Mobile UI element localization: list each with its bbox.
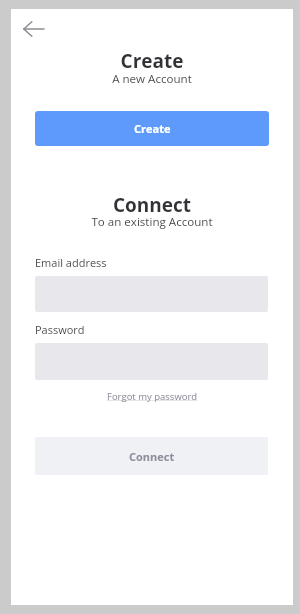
button[interactable]: Forgot my password — [107, 390, 198, 403]
staticText: Connect — [129, 449, 175, 464]
staticText: Email address — [35, 255, 107, 270]
staticText: Create — [134, 121, 171, 136]
button[interactable]: Back — [13, 9, 54, 49]
staticText: Password — [35, 322, 85, 337]
staticText: Connect — [11, 192, 293, 218]
button[interactable]: Connect — [35, 437, 268, 475]
button[interactable]: Create — [35, 111, 269, 146]
staticText: A new Account — [11, 71, 293, 87]
staticText: Create — [11, 48, 293, 74]
staticText: To an existing Account — [11, 214, 293, 230]
